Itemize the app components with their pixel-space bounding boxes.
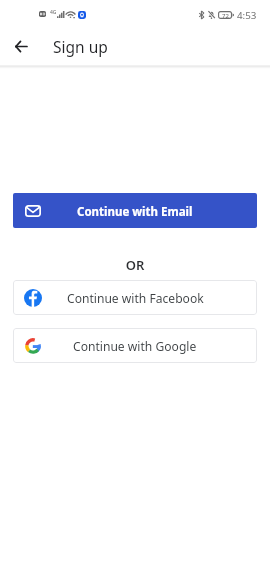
staticText: Continue with Email xyxy=(77,204,193,220)
staticText: 72 xyxy=(222,12,229,20)
staticText: Continue with Facebook xyxy=(67,290,204,306)
button[interactable]: Continue with Email xyxy=(13,193,257,228)
staticText: Continue with Google xyxy=(73,338,197,354)
staticText: 4:53 xyxy=(237,9,257,22)
staticText: OR xyxy=(0,256,270,274)
button[interactable]: Continue with Facebook xyxy=(13,280,257,315)
staticText: Sign up xyxy=(53,36,108,57)
button[interactable]: Continue with Google xyxy=(13,328,257,363)
button[interactable]: Back xyxy=(3,28,39,64)
staticText: 4G xyxy=(50,9,57,16)
